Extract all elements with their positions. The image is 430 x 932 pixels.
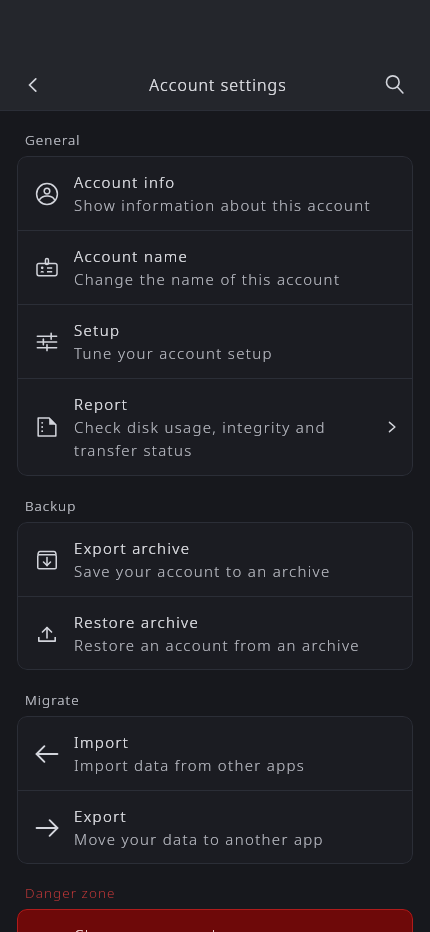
button[interactable]: Change password bbox=[17, 910, 413, 932]
staticText: Account settings bbox=[149, 74, 287, 96]
button[interactable]: Search bbox=[378, 68, 412, 102]
staticText: Change password bbox=[74, 925, 217, 932]
button[interactable]: Export bbox=[17, 791, 413, 864]
staticText: Move your data to another app bbox=[74, 829, 324, 849]
button[interactable]: Back bbox=[16, 68, 50, 102]
button[interactable]: Import bbox=[17, 717, 413, 790]
button[interactable]: Report bbox=[17, 379, 413, 475]
staticText: Report bbox=[74, 394, 129, 414]
staticText: General bbox=[25, 131, 81, 149]
staticText: Danger zone bbox=[25, 884, 116, 902]
staticText: Show information about this account bbox=[74, 195, 371, 215]
button[interactable]: Export archive bbox=[17, 523, 413, 596]
button[interactable]: Account name bbox=[17, 231, 413, 304]
button[interactable]: Restore archive bbox=[17, 597, 413, 670]
staticText: Account name bbox=[74, 246, 189, 266]
staticText: Export archive bbox=[74, 538, 191, 558]
staticText: Import data from other apps bbox=[74, 755, 306, 775]
staticText: Change the name of this account bbox=[74, 269, 341, 289]
staticText: Check disk usage, integrity and transfer… bbox=[74, 417, 383, 461]
staticText: Account info bbox=[74, 172, 176, 192]
staticText: Setup bbox=[74, 320, 121, 340]
button[interactable]: Setup bbox=[17, 305, 413, 378]
button[interactable]: Account info bbox=[17, 157, 413, 230]
staticText: Save your account to an archive bbox=[74, 561, 331, 581]
staticText: Import bbox=[74, 732, 130, 752]
staticText: Restore an account from an archive bbox=[74, 635, 360, 655]
staticText: Tune your account setup bbox=[74, 343, 273, 363]
staticText: Backup bbox=[25, 497, 77, 515]
staticText: Restore archive bbox=[74, 612, 200, 632]
staticText: Export bbox=[74, 806, 127, 826]
staticText: Migrate bbox=[25, 691, 80, 709]
